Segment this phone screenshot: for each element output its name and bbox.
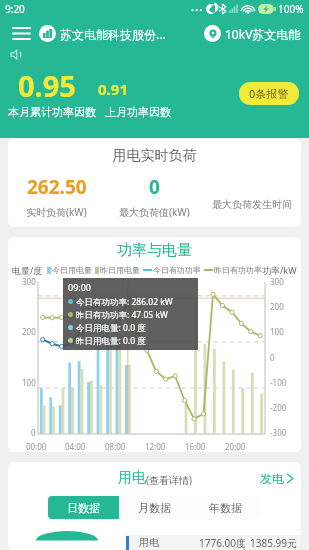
staticText: 08:00 xyxy=(105,441,126,452)
staticText: 9:20 xyxy=(5,2,25,16)
staticText: 用电 xyxy=(139,536,159,549)
button[interactable]: 用电实时负荷 xyxy=(8,139,301,227)
staticText: 12:00 xyxy=(145,441,166,452)
staticText: -200 xyxy=(270,402,287,413)
staticText: 用电实时负荷 xyxy=(8,147,301,165)
staticText: 262.50 xyxy=(27,174,87,200)
staticText: 今日用电量: 0.0 度 xyxy=(76,322,146,334)
button[interactable]: 苏文电能科技股份... xyxy=(39,25,166,42)
button[interactable]: 日数据 xyxy=(48,496,119,519)
staticText: 上月功率因数 xyxy=(105,105,171,119)
button[interactable]: 月数据 xyxy=(119,496,190,519)
staticText: 0 xyxy=(149,174,160,200)
staticText: 0 xyxy=(270,352,275,363)
staticText: 300 xyxy=(270,276,284,287)
staticText: 电量/度 xyxy=(12,264,43,276)
staticText: 10kV苏文电能 xyxy=(225,26,301,42)
staticText: 苏文电能科技股份... xyxy=(60,26,166,42)
staticText: 0条报警 xyxy=(249,86,289,101)
staticText: 发电 xyxy=(260,471,284,486)
staticText: 09:00 xyxy=(68,281,92,293)
staticText: 昨日有功功率 xyxy=(214,265,262,275)
staticText: 功率/kW xyxy=(262,264,297,276)
staticText: 300 xyxy=(22,276,36,287)
button[interactable]: 发电 xyxy=(260,471,293,486)
button[interactable]: 用电 xyxy=(118,469,192,487)
staticText: 20:00 xyxy=(225,441,246,452)
button[interactable]: 10kV苏文电能 xyxy=(204,25,301,42)
staticText: 月数据 xyxy=(138,501,171,515)
staticText: 04:00 xyxy=(65,441,86,452)
staticText: (查看详情) xyxy=(146,473,192,487)
staticText: 16:00 xyxy=(185,441,206,452)
staticText: 0.91 xyxy=(98,79,128,99)
staticText: 0 xyxy=(31,427,36,438)
staticText: 0.95 xyxy=(18,66,76,105)
staticText: 1385.99元 xyxy=(250,536,297,550)
staticText: 1776.00度 xyxy=(199,536,246,550)
button[interactable]: 年数据 xyxy=(190,496,261,519)
staticText: 最大负荷值(kW) xyxy=(119,205,190,219)
staticText: 功率与电量 xyxy=(8,241,301,260)
staticText: 年数据 xyxy=(209,501,242,515)
staticText: 最大负荷发生时间 xyxy=(212,198,292,211)
staticText: 今日有功功率: 286.02 kW xyxy=(76,296,173,308)
button[interactable]: Menu xyxy=(8,20,34,46)
staticText: 200 xyxy=(22,326,36,337)
staticText: 昨日有功功率: 47.05 kW xyxy=(76,309,168,321)
staticText: 200 xyxy=(270,301,284,312)
button[interactable]: 0条报警 xyxy=(239,82,299,105)
staticText: 00:00 xyxy=(26,441,47,452)
staticText: 100% xyxy=(278,2,304,16)
staticText: 实时负荷(kW) xyxy=(26,205,87,219)
staticText: 昨日用电量: 0.0 度 xyxy=(76,335,146,347)
staticText: 今日用电量 xyxy=(52,265,92,275)
staticText: -100 xyxy=(270,377,287,388)
staticText: 100 xyxy=(270,326,284,337)
staticText: -300 xyxy=(270,427,287,438)
staticText: 100 xyxy=(22,377,36,388)
staticText: 用电 xyxy=(118,469,146,487)
staticText: 本月累计功率因数 xyxy=(8,105,96,119)
staticText: 日数据 xyxy=(67,501,100,515)
staticText: 昨日用电量 xyxy=(100,265,140,275)
staticText: 今日有功功率 xyxy=(153,265,201,275)
